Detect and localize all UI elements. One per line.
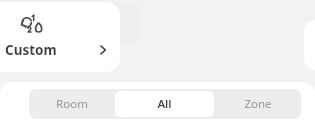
button[interactable]: All: [115, 91, 214, 117]
other: Custom scene: [19, 14, 45, 36]
staticText: Custom: [5, 41, 57, 59]
button[interactable]: Room: [29, 89, 114, 119]
staticText: Room: [56, 96, 88, 112]
button[interactable]: [304, 20, 315, 70]
other: Open: [98, 45, 108, 55]
staticText: All: [157, 96, 172, 112]
button[interactable]: Zone: [215, 89, 301, 119]
button[interactable]: Custom scene: [0, 2, 120, 72]
staticText: Zone: [244, 96, 272, 112]
